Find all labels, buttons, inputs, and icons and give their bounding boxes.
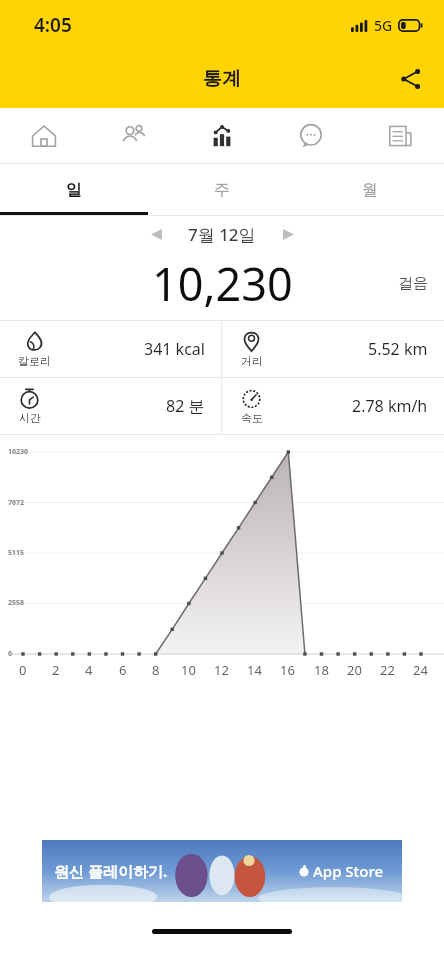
button[interactable]: Share bbox=[386, 54, 436, 104]
button[interactable]: Advertisement bbox=[0, 840, 444, 902]
button[interactable]: 월 bbox=[296, 164, 444, 215]
button[interactable]: Home bbox=[0, 108, 88, 163]
staticText: 10 bbox=[181, 661, 196, 679]
staticText: 주 bbox=[214, 180, 230, 200]
staticText: 월 bbox=[362, 180, 378, 200]
staticText: 원신 플레이하기. bbox=[54, 861, 168, 881]
staticText: 341 kcal bbox=[144, 338, 205, 360]
staticText: 5.52 km bbox=[368, 338, 428, 360]
staticText: 5G bbox=[374, 16, 393, 35]
button[interactable]: 시간 bbox=[0, 378, 221, 434]
staticText: 82 분 bbox=[166, 395, 205, 417]
button[interactable]: Next day bbox=[270, 216, 306, 252]
button[interactable]: 칼로리 bbox=[0, 321, 221, 377]
staticText: 20 bbox=[347, 661, 362, 679]
staticText: 0 bbox=[8, 649, 13, 659]
staticText: 0 bbox=[19, 661, 27, 679]
staticText: 걸음 bbox=[398, 274, 428, 293]
staticText: 7672 bbox=[8, 498, 25, 508]
staticText: 일 bbox=[66, 180, 82, 200]
staticText: 12 bbox=[214, 661, 229, 679]
staticText: 22 bbox=[380, 661, 395, 679]
staticText: 거리 bbox=[241, 354, 263, 368]
staticText: 칼로리 bbox=[18, 354, 51, 368]
staticText: 5115 bbox=[8, 548, 25, 558]
staticText: 속도 bbox=[241, 411, 263, 425]
staticText: 7월 12일 bbox=[188, 223, 256, 246]
staticText: 2.78 km/h bbox=[352, 395, 428, 417]
button[interactable]: Chat bbox=[266, 108, 355, 163]
button[interactable]: 일 bbox=[0, 164, 148, 215]
button[interactable]: Previous day bbox=[138, 216, 174, 252]
staticText: 16 bbox=[280, 661, 295, 679]
button[interactable]: 주 bbox=[148, 164, 296, 215]
staticText: 2558 bbox=[8, 598, 25, 608]
staticText: App Store bbox=[313, 861, 384, 881]
button[interactable]: 거리 bbox=[222, 321, 444, 377]
button[interactable]: Friends bbox=[88, 108, 177, 163]
staticText: 통계 bbox=[203, 67, 241, 91]
staticText: 10230 bbox=[8, 447, 29, 457]
button[interactable]: News bbox=[355, 108, 444, 163]
staticText: 6 bbox=[119, 661, 127, 679]
staticText: 4 bbox=[85, 661, 93, 679]
staticText: 14 bbox=[247, 661, 262, 679]
button[interactable]: 속도 bbox=[222, 378, 444, 434]
staticText: 8 bbox=[152, 661, 160, 679]
button[interactable]: Statistics bbox=[177, 108, 266, 163]
staticText: 시간 bbox=[19, 411, 41, 425]
staticText: 4:05 bbox=[34, 12, 72, 38]
staticText: 2 bbox=[52, 661, 60, 679]
staticText: 18 bbox=[314, 661, 329, 679]
staticText: 10,230 bbox=[152, 253, 293, 314]
staticText: 24 bbox=[413, 661, 428, 679]
